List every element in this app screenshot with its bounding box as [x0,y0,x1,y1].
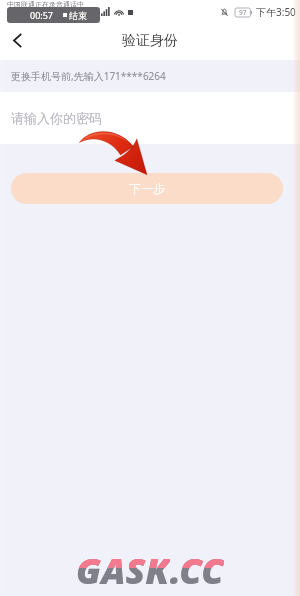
staticText: 中国联通正在录音通话中 [7,0,84,9]
button[interactable]: 请输入你的密码 [0,92,300,144]
staticText: 97 [239,8,247,17]
staticText: 00:57 [30,9,54,21]
staticText: 结束 [69,10,87,21]
staticText: .CC [170,546,224,590]
button[interactable]: Call timer [7,7,100,23]
staticText: 验证身份 [122,32,178,50]
staticText: 请输入你的密码 [11,110,102,126]
staticText: GASK [76,546,170,568]
staticText: .CC [170,546,224,568]
button[interactable]: 下一步 [11,173,283,204]
staticText: 下一步 [129,181,165,196]
staticText: 下午3:50 [256,5,296,19]
staticText: 更换手机号前,先输入171****6264 [11,69,166,83]
staticText: GASK [76,546,170,590]
button[interactable]: Back [0,22,35,58]
